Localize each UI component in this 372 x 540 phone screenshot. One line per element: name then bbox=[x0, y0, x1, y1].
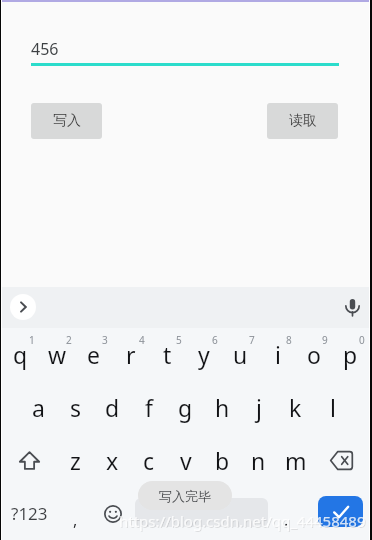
button[interactable]: c bbox=[130, 434, 167, 487]
button[interactable]: z bbox=[57, 434, 94, 487]
button[interactable]: Emoji bbox=[94, 487, 131, 540]
button[interactable]: k bbox=[277, 381, 314, 434]
button[interactable]: y bbox=[185, 328, 222, 381]
staticText: 写入 bbox=[53, 112, 81, 130]
staticText: e bbox=[87, 339, 100, 370]
staticText: u bbox=[233, 339, 248, 370]
staticText: 2 bbox=[66, 333, 72, 347]
staticText: s bbox=[70, 392, 82, 423]
staticText: 456 bbox=[31, 38, 59, 60]
button[interactable]: g bbox=[167, 381, 204, 434]
staticText: w bbox=[48, 339, 67, 370]
button[interactable]: Expand keyboard toolbar bbox=[10, 294, 36, 320]
button[interactable]: q bbox=[2, 328, 39, 381]
button[interactable]: h bbox=[204, 381, 241, 434]
button[interactable]: v bbox=[167, 434, 204, 487]
staticText: q bbox=[13, 339, 28, 370]
button[interactable]: u bbox=[222, 328, 259, 381]
staticText: k bbox=[289, 392, 302, 423]
button[interactable]: n bbox=[240, 434, 277, 487]
button[interactable]: Shift bbox=[2, 434, 57, 487]
staticText: 6 bbox=[212, 333, 218, 347]
staticText: p bbox=[343, 339, 358, 370]
button[interactable]: Voice input bbox=[338, 293, 368, 323]
staticText: h bbox=[215, 392, 230, 423]
button[interactable]: 读取 bbox=[267, 103, 338, 139]
button[interactable]: i bbox=[259, 328, 296, 381]
button[interactable]: Space bbox=[135, 498, 268, 527]
staticText: https://blog.csdn.net/qq_44458489 bbox=[120, 512, 367, 532]
button[interactable]: j bbox=[240, 381, 277, 434]
button[interactable]: o bbox=[295, 328, 332, 381]
staticText: 1 bbox=[29, 333, 35, 347]
staticText: , bbox=[73, 509, 78, 531]
staticText: 4 bbox=[139, 333, 145, 347]
button[interactable]: t bbox=[149, 328, 186, 381]
staticText: y bbox=[198, 339, 210, 370]
button[interactable]: a bbox=[20, 381, 57, 434]
staticText: . bbox=[284, 509, 289, 531]
button[interactable]: 写入 bbox=[31, 103, 102, 139]
staticText: b bbox=[215, 445, 230, 476]
staticText: x bbox=[106, 445, 119, 476]
button[interactable]: l bbox=[314, 381, 351, 434]
staticText: g bbox=[178, 392, 193, 423]
staticText: 0 bbox=[359, 333, 365, 347]
button[interactable]: Enter bbox=[318, 496, 363, 527]
staticText: j bbox=[256, 392, 262, 423]
staticText: l bbox=[330, 392, 336, 423]
staticText: z bbox=[70, 445, 81, 476]
staticText: r bbox=[126, 339, 136, 370]
button[interactable]: r bbox=[112, 328, 149, 381]
button[interactable]: e bbox=[75, 328, 112, 381]
button[interactable]: b bbox=[204, 434, 241, 487]
button[interactable]: ?123 bbox=[2, 487, 57, 540]
staticText: o bbox=[307, 339, 321, 370]
staticText: t bbox=[163, 339, 172, 370]
staticText: 5 bbox=[176, 333, 182, 347]
button[interactable]: , bbox=[57, 487, 94, 540]
staticText: m bbox=[285, 445, 307, 476]
button[interactable]: w bbox=[39, 328, 76, 381]
staticText: 写入完毕 bbox=[159, 488, 211, 504]
staticText: 9 bbox=[322, 333, 328, 347]
staticText: 8 bbox=[286, 333, 292, 347]
staticText: 读取 bbox=[289, 112, 317, 130]
button[interactable]: Backspace bbox=[314, 434, 369, 487]
staticText: v bbox=[180, 445, 192, 476]
staticText: i bbox=[275, 339, 281, 370]
button[interactable]: s bbox=[57, 381, 94, 434]
button[interactable]: x bbox=[94, 434, 131, 487]
staticText: a bbox=[32, 392, 45, 423]
staticText: f bbox=[145, 392, 153, 423]
button[interactable]: f bbox=[130, 381, 167, 434]
staticText: 3 bbox=[102, 333, 108, 347]
staticText: https://blog.csdn.net/qq_44458489 bbox=[119, 511, 366, 531]
staticText: n bbox=[251, 445, 266, 476]
button[interactable]: . bbox=[268, 487, 305, 540]
button[interactable]: d bbox=[94, 381, 131, 434]
button[interactable]: p bbox=[332, 328, 369, 381]
staticText: 7 bbox=[249, 333, 255, 347]
staticText: c bbox=[143, 445, 155, 476]
button[interactable]: m bbox=[277, 434, 314, 487]
staticText: ?123 bbox=[11, 502, 48, 525]
staticText: d bbox=[105, 392, 120, 423]
